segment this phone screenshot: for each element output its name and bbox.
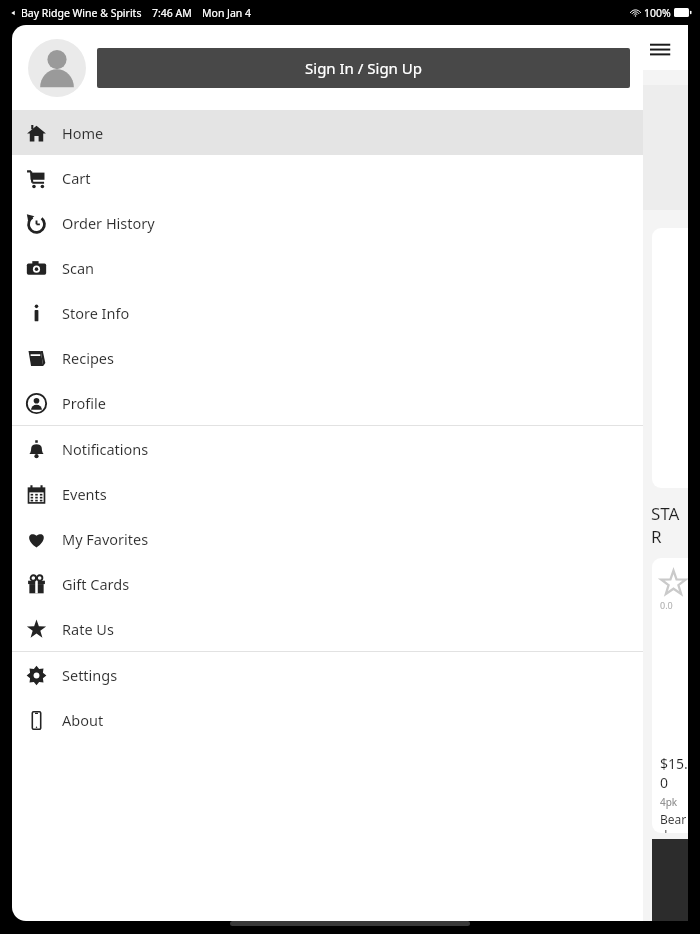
button[interactable]: Home	[12, 110, 643, 155]
staticText: $15.0	[660, 754, 688, 792]
button[interactable]: Order History	[12, 200, 643, 245]
staticText: Notifications	[62, 439, 149, 459]
staticText: Scan	[62, 258, 95, 278]
button[interactable]: My Favorites	[12, 516, 643, 561]
staticText: Order History	[62, 213, 155, 233]
staticText: 100%	[644, 6, 671, 20]
button[interactable]: Recipes	[12, 335, 643, 380]
staticText: Events	[62, 484, 107, 504]
button[interactable]: Sign In / Sign Up	[97, 48, 630, 88]
staticText: STAR	[651, 502, 688, 548]
button[interactable]: Cart	[12, 155, 643, 200]
button[interactable]: Profile	[12, 380, 643, 425]
button[interactable]: Gift Cards	[12, 561, 643, 606]
staticText: 0.0	[660, 599, 673, 611]
staticText: Store Info	[62, 303, 130, 323]
staticText: My Favorites	[62, 529, 149, 549]
staticText: Recipes	[62, 348, 114, 368]
button[interactable]: About	[12, 697, 643, 742]
button[interactable]: Notifications	[12, 426, 643, 471]
staticText: Settings	[62, 665, 118, 685]
button[interactable]: Rate Us	[12, 606, 643, 651]
button[interactable]: Scan	[12, 245, 643, 290]
staticText: Sign In / Sign Up	[305, 58, 422, 78]
staticText: Mon Jan 4	[202, 6, 252, 20]
button[interactable]: Store Info	[12, 290, 643, 335]
button[interactable]: Events	[12, 471, 643, 516]
staticText: Bay Ridge Wine & Spirits	[21, 6, 142, 20]
staticText: Cart	[62, 168, 91, 188]
staticText: Beard	[660, 811, 688, 833]
staticText: Home	[62, 123, 104, 143]
staticText: Profile	[62, 393, 106, 413]
button[interactable]: Settings	[12, 652, 643, 697]
staticText: Rate Us	[62, 619, 114, 639]
staticText: 4pk	[660, 795, 678, 809]
staticText: Gift Cards	[62, 574, 130, 594]
staticText: About	[62, 710, 104, 730]
staticText: 7:46 AM	[152, 6, 192, 20]
button[interactable]: Open navigation menu	[650, 38, 672, 60]
